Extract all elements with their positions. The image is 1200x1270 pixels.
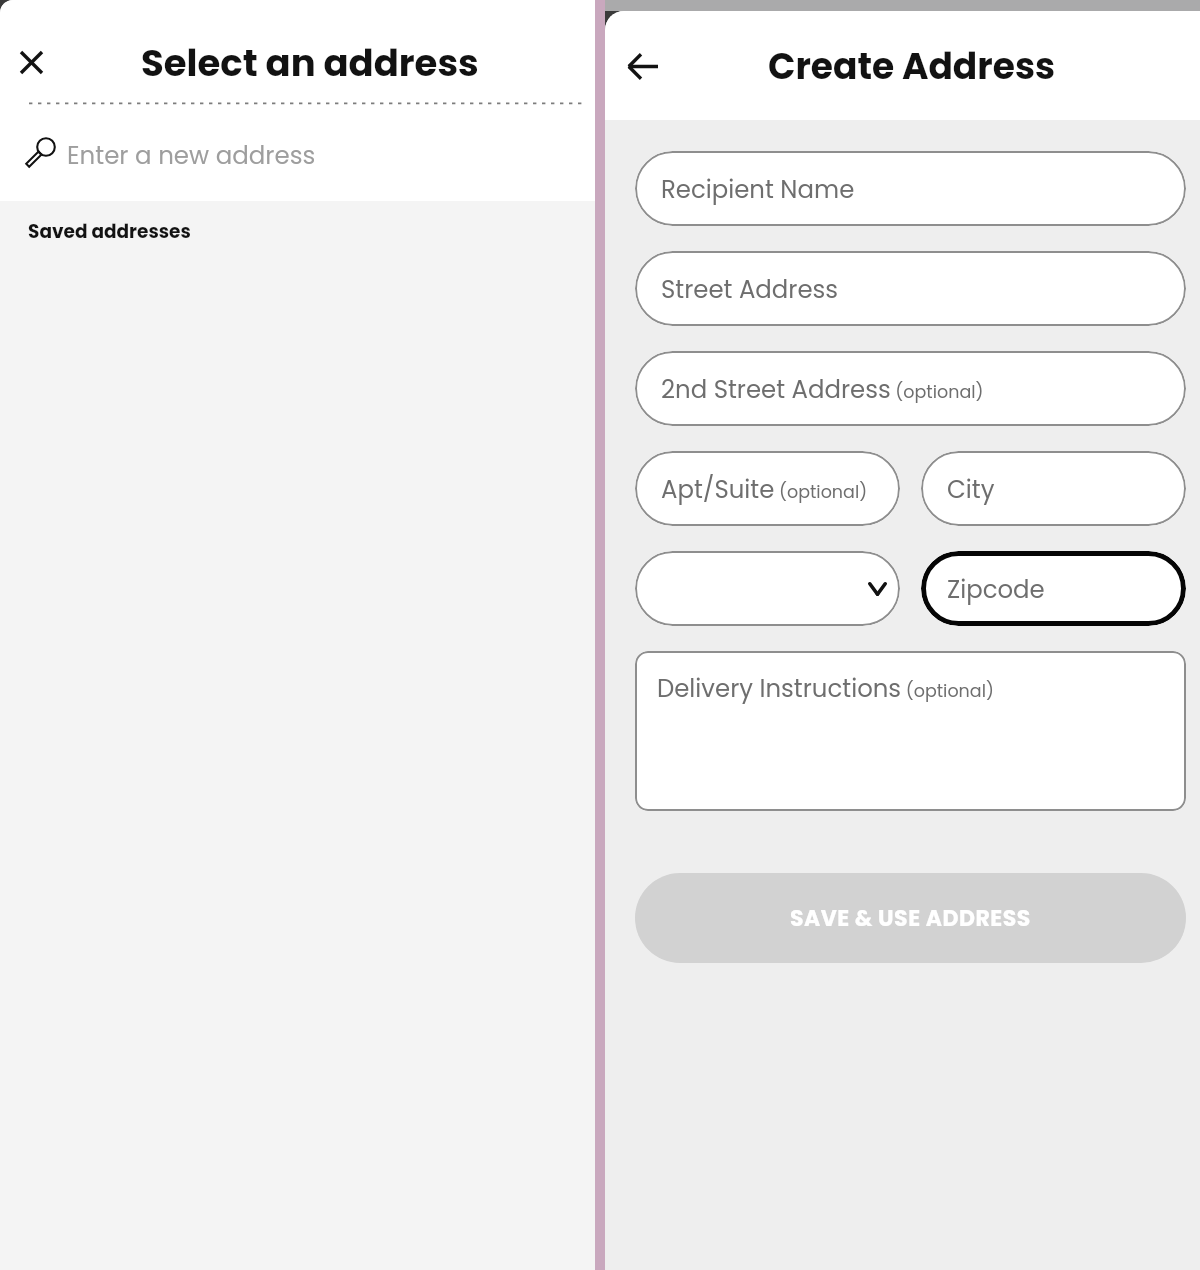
staticText: Saved addresses: [28, 219, 191, 245]
staticText: SAVE & USE ADDRESS: [790, 903, 1031, 934]
button[interactable]: Close: [5, 36, 57, 88]
button[interactable]: SAVE & USE ADDRESS: [635, 873, 1186, 963]
staticText: Recipient Name: [661, 172, 855, 206]
button[interactable]: City: [921, 451, 1186, 526]
staticText: City: [947, 472, 995, 506]
button[interactable]: 2nd Street Address (optional): [635, 351, 1186, 426]
button[interactable]: Street Address: [635, 251, 1186, 326]
button[interactable]: Enter a new address: [0, 105, 595, 201]
button[interactable]: Zipcode: [921, 551, 1186, 626]
button[interactable]: Select state: [635, 551, 900, 626]
button[interactable]: Recipient Name: [635, 151, 1186, 226]
staticText: Delivery Instructions (optional): [657, 671, 994, 705]
staticText: Street Address: [661, 272, 839, 306]
staticText: Enter a new address: [67, 138, 316, 172]
staticText: 2nd Street Address (optional): [661, 372, 984, 406]
button[interactable]: Delivery Instructions (optional): [635, 651, 1186, 811]
staticText: Create Address: [768, 41, 1056, 91]
staticText: Select an address: [141, 37, 479, 89]
staticText: Zipcode: [947, 572, 1045, 606]
button[interactable]: Apt/Suite (optional): [635, 451, 900, 526]
staticText: Apt/Suite (optional): [661, 472, 868, 506]
button[interactable]: Back: [615, 38, 671, 94]
